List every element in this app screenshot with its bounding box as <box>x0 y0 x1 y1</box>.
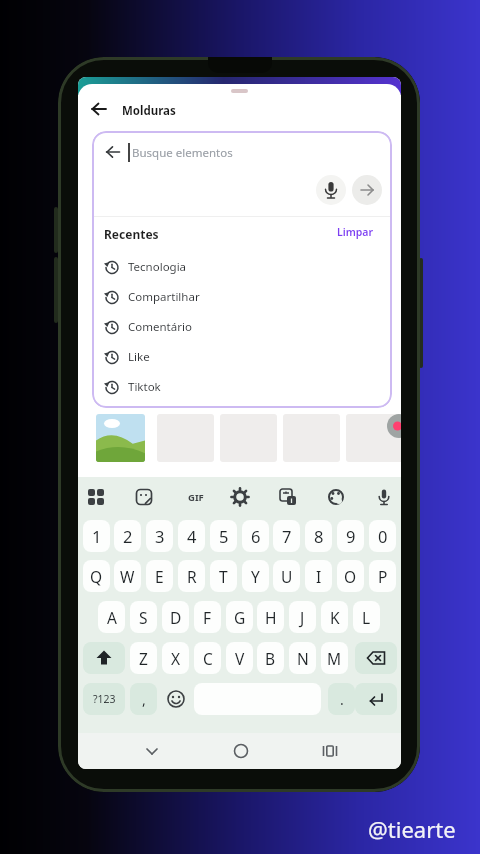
staticText: Molduras <box>122 103 176 119</box>
button[interactable]: L <box>353 601 380 633</box>
button[interactable] <box>316 175 346 205</box>
button[interactable]: 6 <box>242 520 269 552</box>
button[interactable]: C <box>194 642 221 674</box>
button[interactable]: D <box>162 601 189 633</box>
button[interactable]: 3 <box>146 520 173 552</box>
staticText: Busque elementos <box>132 145 233 161</box>
button[interactable]: GIF <box>182 489 210 505</box>
button[interactable] <box>320 741 340 761</box>
button[interactable] <box>134 487 154 507</box>
button[interactable]: 4 <box>178 520 205 552</box>
button[interactable]: R <box>178 560 205 592</box>
staticText: L <box>362 607 371 628</box>
staticText: 0 <box>378 525 388 547</box>
staticText: F <box>203 607 212 628</box>
button[interactable]: Y <box>242 560 269 592</box>
staticText: 4 <box>187 525 197 547</box>
staticText: GIF <box>188 491 204 504</box>
staticText: J <box>300 607 305 628</box>
staticText: 3 <box>155 525 165 547</box>
button[interactable]: O <box>337 560 364 592</box>
button[interactable]: A <box>98 601 125 633</box>
button[interactable]: W <box>114 560 141 592</box>
button[interactable]: K <box>321 601 348 633</box>
staticText: 9 <box>346 525 356 547</box>
button[interactable]: J <box>289 601 316 633</box>
button[interactable]: Limpar <box>337 225 374 239</box>
button[interactable]: I <box>305 560 332 592</box>
button[interactable]: 9 <box>337 520 364 552</box>
staticText: O <box>344 566 357 587</box>
button[interactable]: U <box>273 560 300 592</box>
staticText: ?123 <box>93 692 116 706</box>
button[interactable] <box>230 487 250 507</box>
button[interactable] <box>374 487 394 507</box>
button[interactable]: , <box>130 683 157 715</box>
button[interactable] <box>352 175 382 205</box>
button[interactable] <box>387 414 401 438</box>
button[interactable] <box>142 741 162 761</box>
button[interactable]: Q <box>83 560 110 592</box>
staticText: N <box>297 648 309 669</box>
button[interactable] <box>346 414 401 462</box>
button[interactable] <box>105 144 121 160</box>
staticText: Tiktok <box>128 379 161 395</box>
button[interactable]: B <box>257 642 284 674</box>
staticText: U <box>281 566 293 587</box>
button[interactable]: Tiktok <box>100 374 384 400</box>
button[interactable]: 2 <box>114 520 141 552</box>
staticText: M <box>327 648 342 669</box>
button[interactable] <box>90 100 108 118</box>
staticText: D <box>170 607 182 628</box>
button[interactable]: Like <box>100 344 384 370</box>
staticText: 1 <box>92 525 102 547</box>
button[interactable]: E <box>146 560 173 592</box>
button[interactable]: P <box>369 560 396 592</box>
button[interactable]: Compartilhar <box>100 284 384 310</box>
button[interactable]: 5 <box>210 520 237 552</box>
staticText: A <box>107 607 117 628</box>
staticText: Comentário <box>128 319 192 335</box>
staticText: T <box>219 566 228 587</box>
staticText: 6 <box>251 525 261 547</box>
button[interactable]: F <box>194 601 221 633</box>
staticText: V <box>235 648 245 669</box>
button[interactable] <box>162 685 190 713</box>
button[interactable]: Tecnologia <box>100 254 384 280</box>
button[interactable] <box>231 741 251 761</box>
button[interactable]: 1 <box>83 520 110 552</box>
staticText: G <box>234 607 246 628</box>
button[interactable]: M <box>321 642 348 674</box>
button[interactable]: 8 <box>305 520 332 552</box>
button[interactable]: G <box>226 601 253 633</box>
button[interactable]: Comentário <box>100 314 384 340</box>
button[interactable]: 7 <box>273 520 300 552</box>
button[interactable]: . <box>328 683 355 715</box>
staticText: . <box>340 690 344 709</box>
button[interactable] <box>83 642 125 674</box>
staticText: Y <box>251 566 260 587</box>
staticText: 5 <box>219 525 229 547</box>
button[interactable] <box>278 487 298 507</box>
button[interactable]: V <box>226 642 253 674</box>
button[interactable]: 0 <box>369 520 396 552</box>
button[interactable]: S <box>130 601 157 633</box>
button[interactable]: H <box>257 601 284 633</box>
staticText: B <box>265 648 276 669</box>
button[interactable]: X <box>162 642 189 674</box>
button[interactable] <box>96 414 145 462</box>
button[interactable] <box>86 487 106 507</box>
button[interactable]: ?123 <box>83 683 125 715</box>
button[interactable]: Z <box>130 642 157 674</box>
button[interactable] <box>355 642 397 674</box>
staticText: K <box>330 607 340 628</box>
button[interactable] <box>355 683 397 715</box>
button[interactable]: N <box>289 642 316 674</box>
staticText: X <box>171 648 181 669</box>
button[interactable]: T <box>210 560 237 592</box>
button[interactable] <box>326 487 346 507</box>
